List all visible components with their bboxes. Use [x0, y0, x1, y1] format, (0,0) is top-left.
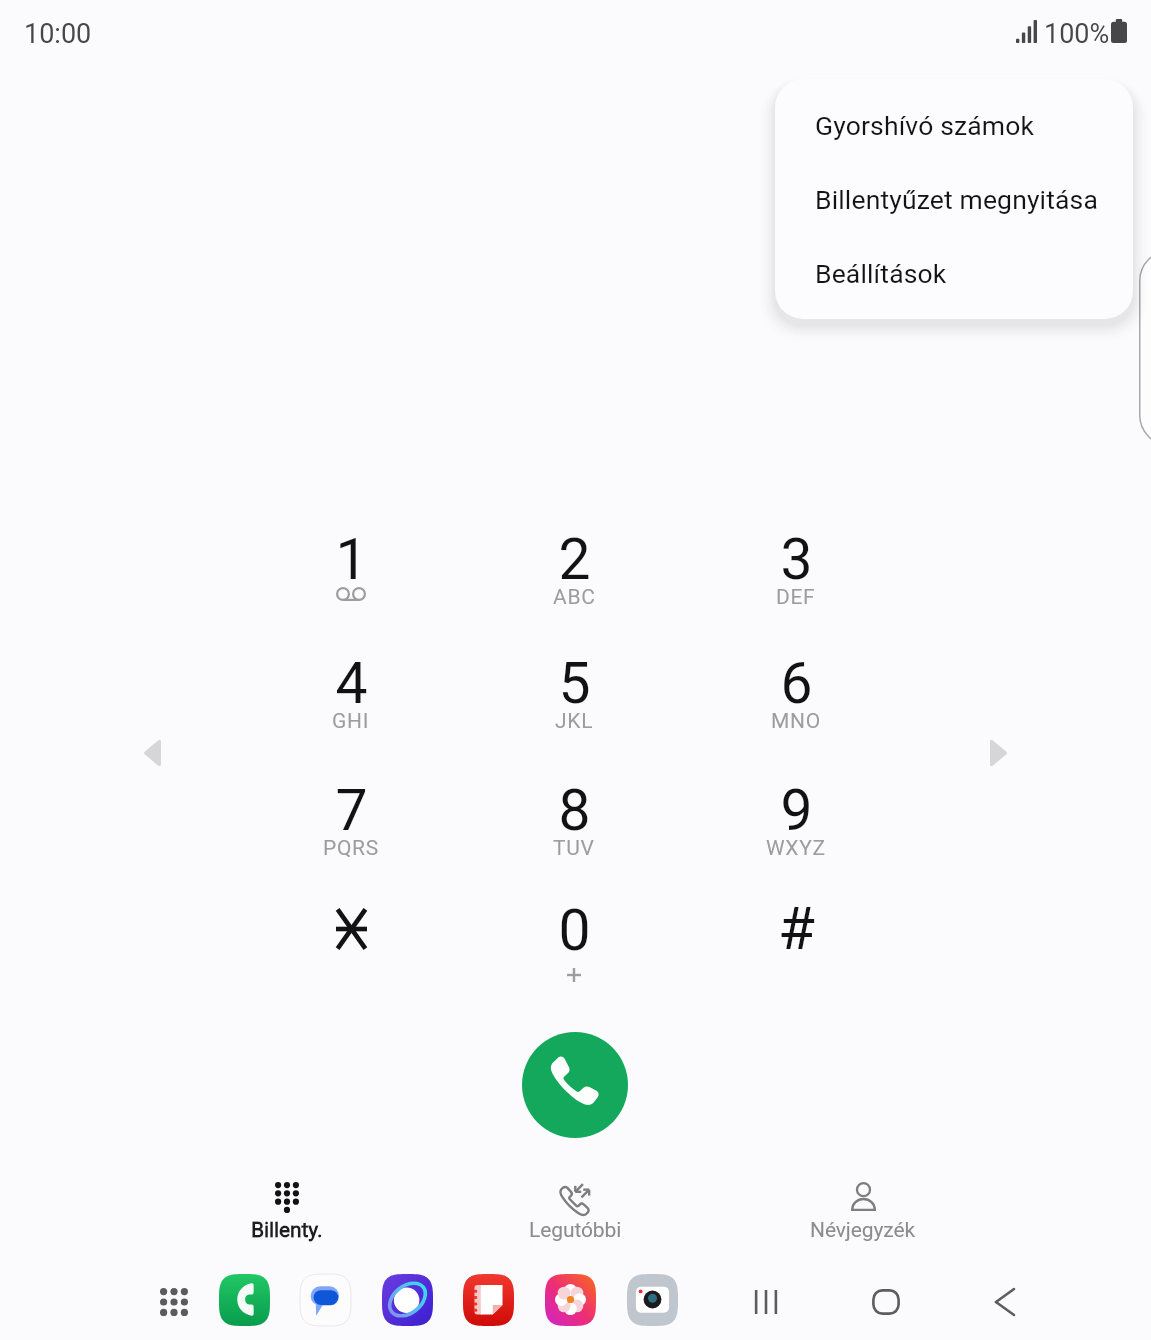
button[interactable]: 1 — [271, 512, 431, 624]
button[interactable]: Camera — [627, 1274, 678, 1326]
button[interactable]: Legutóbbi — [435, 1166, 715, 1250]
staticText: 2 — [558, 526, 591, 593]
button[interactable]: Gallery — [545, 1274, 596, 1326]
button[interactable]: Phone — [219, 1274, 270, 1326]
staticText: 8 — [558, 777, 591, 844]
button[interactable]: Messages — [300, 1274, 351, 1326]
staticText: Névjegyzék — [810, 1218, 916, 1243]
button[interactable]: Notes — [463, 1274, 514, 1326]
button[interactable]: Apps — [150, 1278, 198, 1326]
staticText: Billenty. — [251, 1218, 323, 1243]
button[interactable]: 9 — [716, 763, 876, 875]
button[interactable]: Beállítások — [775, 227, 1133, 319]
staticText: JKL — [555, 709, 594, 734]
button[interactable]: 3 — [716, 512, 876, 624]
button[interactable]: Home — [852, 1266, 920, 1338]
staticText: Gyorshívó számok — [815, 110, 1035, 141]
button[interactable]: Gyorshívó számok — [775, 79, 1133, 171]
button[interactable]: Previous page — [126, 722, 178, 784]
button[interactable]: Next page — [973, 722, 1025, 784]
staticText: 6 — [780, 650, 813, 717]
staticText: 10:00 — [24, 18, 92, 50]
button[interactable]: Névjegyzék — [723, 1166, 1003, 1250]
button[interactable]: 8 — [494, 763, 654, 875]
staticText: GHI — [332, 709, 370, 734]
staticText: Legutóbbi — [529, 1218, 622, 1243]
staticText: MNO — [771, 709, 821, 734]
button[interactable]: Recent apps — [732, 1266, 800, 1338]
staticText: 5 — [558, 650, 591, 717]
button[interactable]: Billenty. — [147, 1166, 427, 1250]
button[interactable]: 2 — [494, 512, 654, 624]
button[interactable]: 7 — [271, 763, 431, 875]
staticText: 4 — [335, 650, 368, 717]
button[interactable]: Call — [522, 1032, 628, 1138]
button[interactable]: Back — [971, 1266, 1039, 1338]
staticText: 1 — [335, 526, 368, 593]
button[interactable]: 4 — [271, 636, 431, 748]
staticText: WXYZ — [766, 836, 826, 861]
staticText: 3 — [780, 526, 813, 593]
button[interactable]: 5 — [494, 636, 654, 748]
button[interactable]: 0 — [494, 883, 654, 995]
button[interactable]: 6 — [716, 636, 876, 748]
staticText: Billentyűzet megnyitása — [815, 184, 1098, 215]
staticText: PQRS — [323, 836, 379, 861]
button[interactable]: Billentyűzet megnyitása — [775, 153, 1133, 245]
button[interactable]: star — [271, 883, 431, 995]
staticText: 0 — [558, 897, 591, 964]
staticText: ABC — [553, 585, 596, 610]
staticText: TUV — [553, 836, 595, 861]
staticText: DEF — [776, 585, 816, 610]
staticText: Beállítások — [815, 258, 947, 289]
button[interactable]: Internet — [382, 1274, 433, 1326]
button[interactable]: # — [716, 883, 876, 995]
staticText: 9 — [780, 777, 813, 844]
staticText: 7 — [335, 777, 368, 844]
staticText: # — [778, 893, 815, 963]
staticText: 100% — [1044, 18, 1110, 50]
